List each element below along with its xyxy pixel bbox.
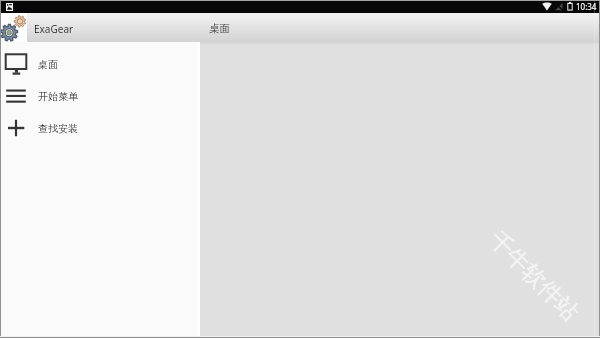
staticText: ExaGear <box>34 22 74 36</box>
other: ExaGear <box>0 13 200 42</box>
staticText: 桌面 <box>209 22 230 35</box>
staticText: 开始菜单 <box>38 90 78 103</box>
staticText: 10:34 <box>576 1 597 12</box>
staticText: 千牛软件站 <box>483 225 585 327</box>
button[interactable]: 桌面 <box>0 48 200 80</box>
button[interactable]: 查找安装 <box>0 112 200 144</box>
button[interactable]: 开始菜单 <box>0 80 200 112</box>
staticText: 查找安装 <box>38 122 78 135</box>
staticText: 桌面 <box>38 58 58 71</box>
